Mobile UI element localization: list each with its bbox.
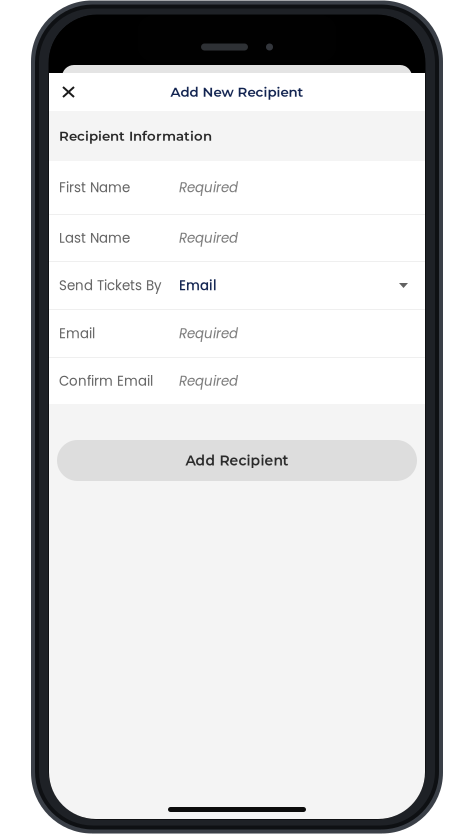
staticText: Required [179, 324, 238, 343]
staticText: Send Tickets By [59, 276, 162, 295]
staticText: Last Name [59, 229, 130, 247]
staticText: Confirm Email [59, 372, 153, 390]
button[interactable]: Last Name [49, 215, 425, 261]
staticText: Required [179, 372, 238, 390]
staticText: Email [179, 276, 217, 295]
button[interactable]: Confirm Email [49, 358, 425, 404]
button[interactable]: Add Recipient [57, 440, 417, 481]
staticText: Add New Recipient [170, 84, 303, 100]
button[interactable]: Email [49, 310, 425, 357]
staticText: Required [179, 178, 238, 197]
button[interactable]: Close [49, 73, 88, 111]
staticText: Email [59, 324, 95, 343]
staticText: Recipient Information [59, 128, 212, 144]
staticText: First Name [59, 178, 130, 197]
button[interactable]: First Name [49, 161, 425, 214]
staticText: Add Recipient [185, 452, 288, 469]
staticText: Required [179, 229, 238, 247]
button[interactable]: Send Tickets By [49, 262, 425, 309]
